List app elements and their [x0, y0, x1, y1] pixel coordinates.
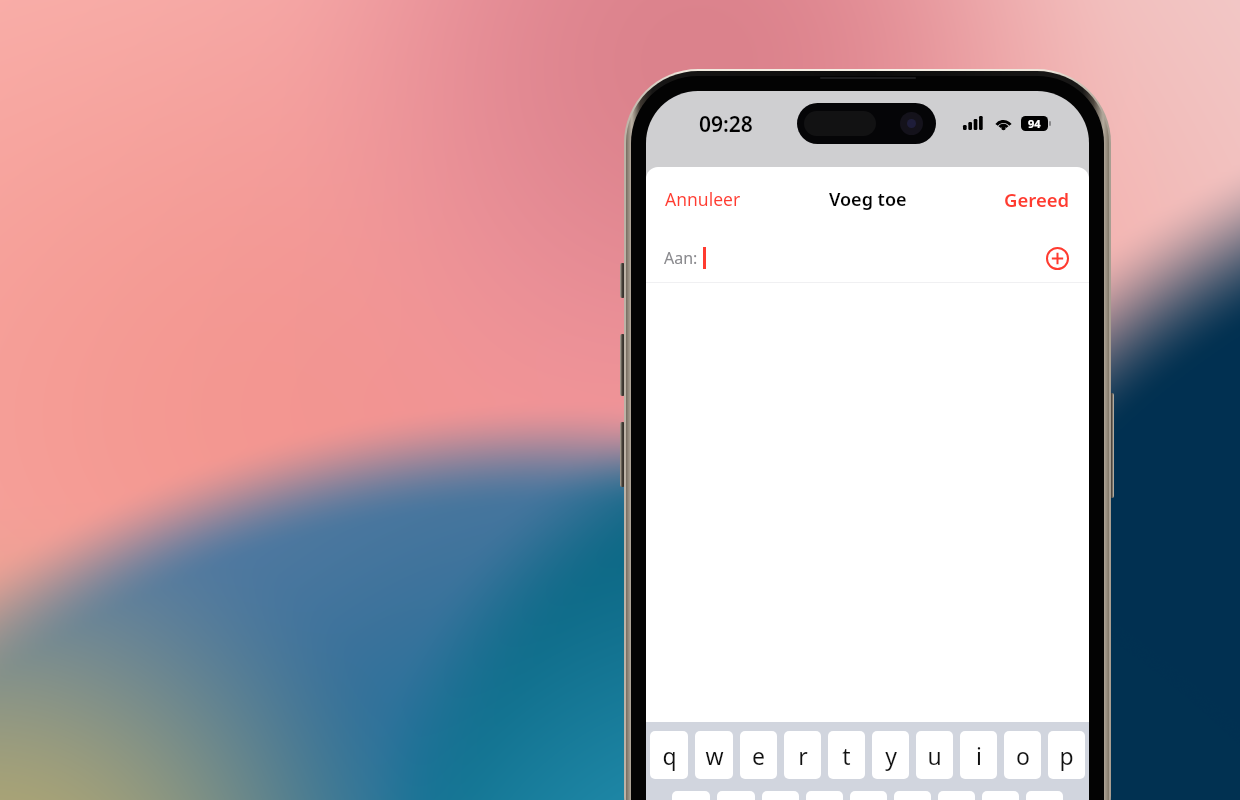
staticText: Aan:	[664, 247, 698, 269]
button[interactable]: Annuleer	[657, 179, 749, 219]
staticText: 09:28	[699, 110, 753, 139]
button[interactable]: g	[850, 791, 887, 800]
button[interactable]: t	[828, 731, 865, 779]
button[interactable]: l	[1026, 791, 1063, 800]
button[interactable]: k	[982, 791, 1019, 800]
staticText: p	[1059, 740, 1074, 771]
button[interactable]: r	[784, 731, 821, 779]
staticText: i	[976, 740, 982, 771]
button[interactable]: Voeg contact toe	[1041, 242, 1073, 274]
button[interactable]: w	[695, 731, 733, 779]
button[interactable]: h	[894, 791, 931, 800]
staticText: y	[885, 740, 897, 771]
button[interactable]: u	[916, 731, 953, 779]
button[interactable]: e	[740, 731, 777, 779]
button[interactable]: d	[762, 791, 799, 800]
button[interactable]: Gereed	[996, 179, 1078, 220]
button[interactable]: a	[672, 791, 710, 800]
button[interactable]: p	[1048, 731, 1085, 779]
staticText: q	[662, 740, 677, 771]
button[interactable]: o	[1004, 731, 1041, 779]
staticText: Annuleer	[665, 187, 741, 211]
button[interactable]: s	[717, 791, 755, 800]
button[interactable]: i	[960, 731, 997, 779]
staticText: t	[842, 740, 851, 771]
button[interactable]: f	[806, 791, 843, 800]
staticText: e	[752, 740, 765, 771]
staticText: r	[798, 740, 808, 771]
staticText: u	[927, 740, 942, 771]
staticText: Gereed	[1004, 187, 1070, 212]
staticText: o	[1016, 740, 1030, 771]
staticText: w	[705, 740, 724, 771]
button[interactable]: y	[872, 731, 909, 779]
staticText: 94	[1028, 116, 1041, 131]
button[interactable]: j	[938, 791, 975, 800]
button[interactable]: q	[650, 731, 688, 779]
staticText: Voeg toe	[829, 187, 907, 212]
